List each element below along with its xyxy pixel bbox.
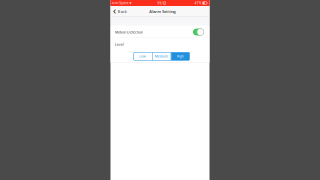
button[interactable]: High — [171, 52, 189, 60]
staticText: High — [177, 54, 184, 58]
staticText: Level — [115, 42, 124, 47]
staticText: Motion Detection — [115, 30, 143, 35]
button[interactable]: Low — [134, 52, 152, 60]
button[interactable]: Back — [110, 6, 129, 17]
staticText: 11:12 — [157, 0, 166, 6]
staticText: Back — [118, 9, 127, 14]
button[interactable]: Motion Detection — [110, 26, 209, 37]
staticText: Sprint — [119, 1, 128, 5]
staticText: 41% — [194, 1, 201, 5]
button[interactable]: Motion Detection — [193, 28, 204, 35]
staticText: Medium — [155, 54, 168, 58]
staticText: Low — [139, 54, 146, 58]
button[interactable]: Medium — [152, 52, 171, 60]
staticText: Alarm Setting — [149, 9, 175, 14]
